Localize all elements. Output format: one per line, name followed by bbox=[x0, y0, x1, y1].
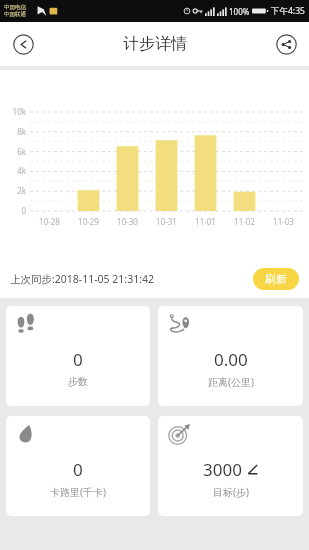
staticText: 0.00 bbox=[214, 348, 248, 371]
staticText: 100% bbox=[229, 6, 250, 17]
staticText: 0 bbox=[73, 348, 83, 371]
staticText: 中国电信 bbox=[4, 4, 26, 11]
staticText: 0 bbox=[73, 458, 83, 481]
staticText: 10-30 bbox=[108, 216, 147, 227]
staticText: 11-03 bbox=[264, 216, 303, 227]
staticText: 刷新 bbox=[265, 272, 287, 286]
staticText: 卡路里(千卡) bbox=[50, 485, 106, 499]
staticText: 10-28 bbox=[30, 216, 69, 227]
staticText: 11-02 bbox=[225, 216, 264, 227]
staticText: 计步详情 bbox=[123, 34, 187, 54]
staticText: 4k bbox=[0, 165, 26, 176]
staticText: 3000 bbox=[203, 458, 242, 481]
staticText: 6k bbox=[0, 146, 26, 157]
staticText: 2k bbox=[0, 185, 26, 196]
button[interactable]: 刷新 bbox=[253, 268, 299, 290]
staticText: 目标(步) bbox=[213, 485, 249, 499]
button[interactable]: 3000 bbox=[158, 416, 303, 516]
staticText: 10-29 bbox=[69, 216, 108, 227]
staticText: 8k bbox=[0, 126, 26, 137]
button[interactable]: 0 bbox=[6, 306, 150, 406]
button[interactable]: Share bbox=[271, 29, 301, 59]
staticText: 0 bbox=[0, 205, 26, 216]
staticText: 10k bbox=[0, 106, 26, 117]
staticText: 步数 bbox=[68, 375, 88, 388]
staticText: 下午4:35 bbox=[271, 5, 305, 17]
button[interactable]: 0 bbox=[6, 416, 150, 516]
staticText: 中国联通 bbox=[4, 11, 26, 18]
staticText: 10-31 bbox=[147, 216, 186, 227]
staticText: 11-01 bbox=[186, 216, 225, 227]
staticText: 距离(公里) bbox=[208, 375, 254, 389]
button[interactable]: Back bbox=[8, 29, 38, 59]
button[interactable]: 0.00 bbox=[158, 306, 303, 406]
staticText: 上次同步:2018-11-05 21:31:42 bbox=[10, 272, 155, 286]
